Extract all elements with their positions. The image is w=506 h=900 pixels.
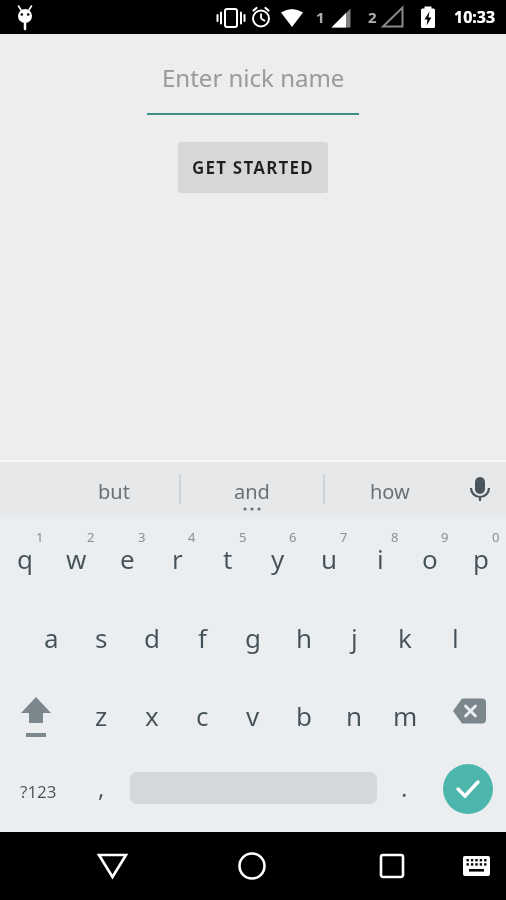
button[interactable]: e: [102, 523, 152, 593]
button[interactable]: j: [329, 602, 379, 672]
staticText: 7: [340, 528, 348, 546]
staticText: j: [351, 620, 358, 655]
staticText: d: [144, 620, 160, 655]
button[interactable]: d: [127, 602, 177, 672]
staticText: n: [346, 698, 363, 733]
staticText: u: [321, 541, 338, 576]
staticText: a: [44, 620, 59, 655]
button[interactable]: .: [379, 752, 429, 822]
staticText: 8: [391, 528, 399, 546]
button[interactable]: w: [51, 523, 101, 593]
staticText: .: [401, 771, 408, 804]
button[interactable]: p: [456, 523, 506, 593]
staticText: 1: [316, 7, 325, 27]
button[interactable]: [368, 842, 416, 890]
staticText: but: [98, 478, 130, 505]
staticText: q: [17, 541, 33, 576]
button[interactable]: [130, 769, 377, 813]
staticText: v: [246, 698, 260, 733]
button[interactable]: h: [279, 602, 329, 672]
staticText: 2: [368, 7, 377, 27]
button[interactable]: n: [329, 680, 379, 750]
staticText: ?123: [20, 780, 57, 803]
button[interactable]: [228, 842, 276, 890]
staticText: 10:33: [454, 6, 496, 28]
staticText: l: [452, 620, 459, 655]
button[interactable]: o: [405, 523, 455, 593]
staticText: h: [296, 620, 313, 655]
staticText: e: [120, 541, 135, 576]
button[interactable]: but: [54, 471, 174, 511]
staticText: r: [172, 541, 183, 576]
button[interactable]: m: [380, 680, 430, 750]
staticText: 1: [36, 528, 44, 546]
button[interactable]: v: [228, 680, 278, 750]
button[interactable]: s: [76, 602, 126, 672]
staticText: c: [196, 698, 209, 733]
staticText: b: [296, 698, 312, 733]
button[interactable]: GET STARTED: [178, 142, 328, 193]
button[interactable]: [88, 842, 136, 890]
button[interactable]: c: [177, 680, 227, 750]
staticText: m: [393, 698, 418, 733]
button[interactable]: g: [228, 602, 278, 672]
button[interactable]: b: [279, 680, 329, 750]
button[interactable]: u: [304, 523, 354, 593]
staticText: x: [145, 698, 159, 733]
button[interactable]: ,: [76, 752, 126, 822]
button[interactable]: Enter nick name: [147, 61, 359, 115]
button[interactable]: l: [430, 602, 480, 672]
button[interactable]: [458, 467, 502, 511]
button[interactable]: [453, 842, 501, 890]
staticText: and: [234, 478, 270, 505]
button[interactable]: how: [330, 471, 450, 511]
staticText: y: [271, 541, 285, 576]
staticText: how: [370, 478, 410, 505]
button[interactable]: q: [0, 523, 50, 593]
staticText: i: [377, 541, 384, 576]
staticText: 5: [239, 528, 247, 546]
staticText: 3: [138, 528, 146, 546]
staticText: GET STARTED: [192, 156, 314, 179]
staticText: 2: [87, 528, 95, 546]
button[interactable]: x: [127, 680, 177, 750]
staticText: Enter nick name: [162, 61, 345, 94]
staticText: s: [95, 620, 108, 655]
staticText: p: [473, 541, 489, 576]
button[interactable]: r: [152, 523, 202, 593]
staticText: f: [198, 620, 207, 655]
staticText: w: [66, 541, 87, 576]
button[interactable]: [443, 766, 493, 816]
button[interactable]: ?123: [13, 756, 63, 826]
button[interactable]: [442, 693, 497, 748]
staticText: g: [245, 620, 261, 655]
button[interactable]: k: [380, 602, 430, 672]
staticText: 4: [188, 528, 196, 546]
button[interactable]: a: [26, 602, 76, 672]
staticText: z: [95, 698, 108, 733]
button[interactable]: [10, 693, 65, 748]
staticText: 9: [441, 528, 449, 546]
button[interactable]: t: [203, 523, 253, 593]
button[interactable]: and: [192, 471, 312, 511]
button[interactable]: f: [177, 602, 227, 672]
staticText: o: [422, 541, 438, 576]
button[interactable]: i: [355, 523, 405, 593]
button[interactable]: y: [253, 523, 303, 593]
staticText: 0: [492, 528, 500, 546]
staticText: ,: [98, 771, 105, 804]
button[interactable]: z: [76, 680, 126, 750]
staticText: 6: [289, 528, 297, 546]
staticText: k: [398, 620, 412, 655]
staticText: t: [223, 541, 233, 576]
